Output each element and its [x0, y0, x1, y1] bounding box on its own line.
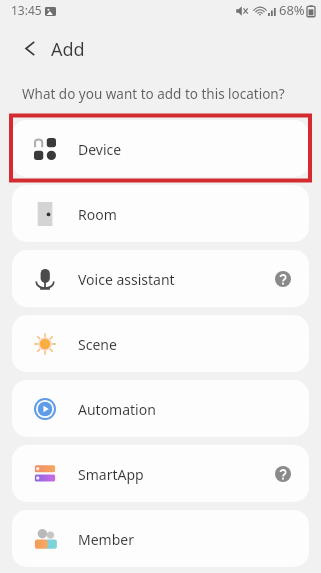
button[interactable]: Device: [12, 120, 309, 177]
staticText: 68%: [279, 1, 305, 19]
staticText: Automation: [78, 400, 156, 419]
button[interactable]: Automation: [12, 380, 309, 437]
button[interactable]: Room: [12, 185, 309, 242]
button[interactable]: Help: [275, 466, 291, 482]
staticText: What do you want to add to this location…: [22, 85, 285, 103]
staticText: Voice assistant: [78, 270, 175, 289]
staticText: Device: [78, 140, 122, 159]
staticText: Add: [51, 37, 85, 62]
button[interactable]: Scene: [12, 315, 309, 372]
staticText: Scene: [78, 335, 117, 354]
button[interactable]: Help: [275, 271, 291, 287]
button[interactable]: Back: [16, 34, 44, 62]
staticText: Member: [78, 530, 134, 549]
staticText: 13:45: [11, 2, 42, 18]
button[interactable]: Member: [12, 510, 309, 567]
staticText: Room: [78, 205, 117, 224]
button[interactable]: SmartApp: [12, 445, 309, 502]
staticText: SmartApp: [78, 465, 144, 484]
button[interactable]: Voice assistant: [12, 250, 309, 307]
